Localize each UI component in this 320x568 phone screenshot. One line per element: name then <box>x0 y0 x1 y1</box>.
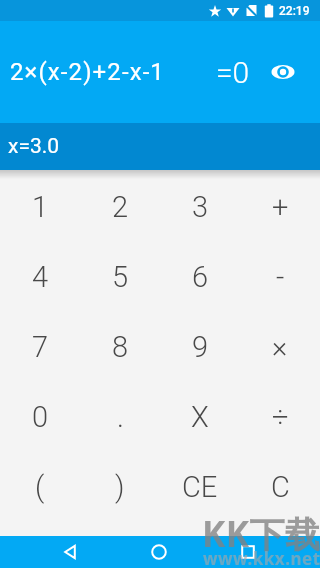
button[interactable]: 7 <box>0 312 80 382</box>
button[interactable]: CE <box>160 452 240 522</box>
staticText: ( <box>35 470 45 504</box>
staticText: x=3.0 <box>8 134 60 159</box>
button[interactable]: C <box>240 452 320 522</box>
button[interactable]: 4 <box>0 242 80 312</box>
staticText: . <box>117 400 124 434</box>
staticText: 4 <box>32 260 49 294</box>
button[interactable]: ÷ <box>240 382 320 452</box>
staticText: - <box>276 260 285 294</box>
staticText: ÷ <box>272 400 289 434</box>
button[interactable]: ) <box>80 452 160 522</box>
button[interactable]: 6 <box>160 242 240 312</box>
staticText: X <box>191 400 209 434</box>
staticText: 7 <box>32 330 49 364</box>
button[interactable]: 9 <box>160 312 240 382</box>
staticText: 5 <box>112 260 129 294</box>
staticText: × <box>272 330 288 364</box>
staticText: 2 <box>112 190 129 224</box>
staticText: 22:19 <box>279 4 310 18</box>
button[interactable]: 2 <box>80 172 160 242</box>
button[interactable] <box>268 57 298 87</box>
button[interactable]: 5 <box>80 242 160 312</box>
staticText: C <box>271 470 290 504</box>
button[interactable] <box>144 536 174 568</box>
staticText: 0 <box>32 400 49 434</box>
button[interactable]: × <box>240 312 320 382</box>
button[interactable]: 1 <box>0 172 80 242</box>
staticText: 8 <box>112 330 129 364</box>
button[interactable]: - <box>240 242 320 312</box>
button[interactable]: ( <box>0 452 80 522</box>
button[interactable] <box>233 536 263 568</box>
staticText: 3 <box>192 190 209 224</box>
staticText: 1 <box>32 190 49 224</box>
button[interactable]: 0 <box>0 382 80 452</box>
button[interactable] <box>55 536 85 568</box>
button[interactable]: 8 <box>80 312 160 382</box>
button[interactable]: + <box>240 172 320 242</box>
button[interactable]: 3 <box>160 172 240 242</box>
staticText: CE <box>182 470 218 504</box>
button[interactable]: . <box>80 382 160 452</box>
staticText: ) <box>115 470 125 504</box>
button[interactable]: X <box>160 382 240 452</box>
staticText: www.kkx.net <box>203 547 320 568</box>
staticText: =0 <box>216 55 250 90</box>
staticText: 9 <box>192 330 209 364</box>
staticText: 2×(x-2)+2-x-1 <box>10 58 165 86</box>
staticText: 6 <box>192 260 209 294</box>
staticText: + <box>272 190 289 224</box>
staticText: KK下载 <box>202 510 320 558</box>
